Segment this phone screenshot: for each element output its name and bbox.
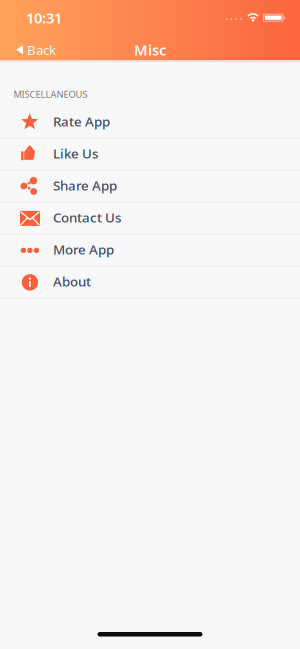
staticText: More App bbox=[53, 240, 114, 258]
staticText: MISCELLANEOUS bbox=[13, 88, 87, 100]
staticText: Share App bbox=[53, 176, 117, 194]
staticText: Misc bbox=[134, 40, 166, 59]
staticText: About bbox=[53, 272, 91, 290]
staticText: Contact Us bbox=[53, 208, 121, 226]
staticText: Like Us bbox=[53, 144, 98, 162]
staticText: Rate App bbox=[53, 112, 110, 130]
button[interactable]: Rate App bbox=[0, 106, 300, 138]
button[interactable]: About bbox=[0, 266, 300, 298]
staticText: Back bbox=[27, 41, 56, 59]
button[interactable]: Like Us bbox=[0, 138, 300, 170]
button[interactable]: Share App bbox=[0, 170, 300, 202]
button[interactable]: Back bbox=[16, 41, 56, 59]
button[interactable]: More App bbox=[0, 234, 300, 266]
button[interactable]: Contact Us bbox=[0, 202, 300, 234]
staticText: 10:31 bbox=[26, 8, 62, 27]
